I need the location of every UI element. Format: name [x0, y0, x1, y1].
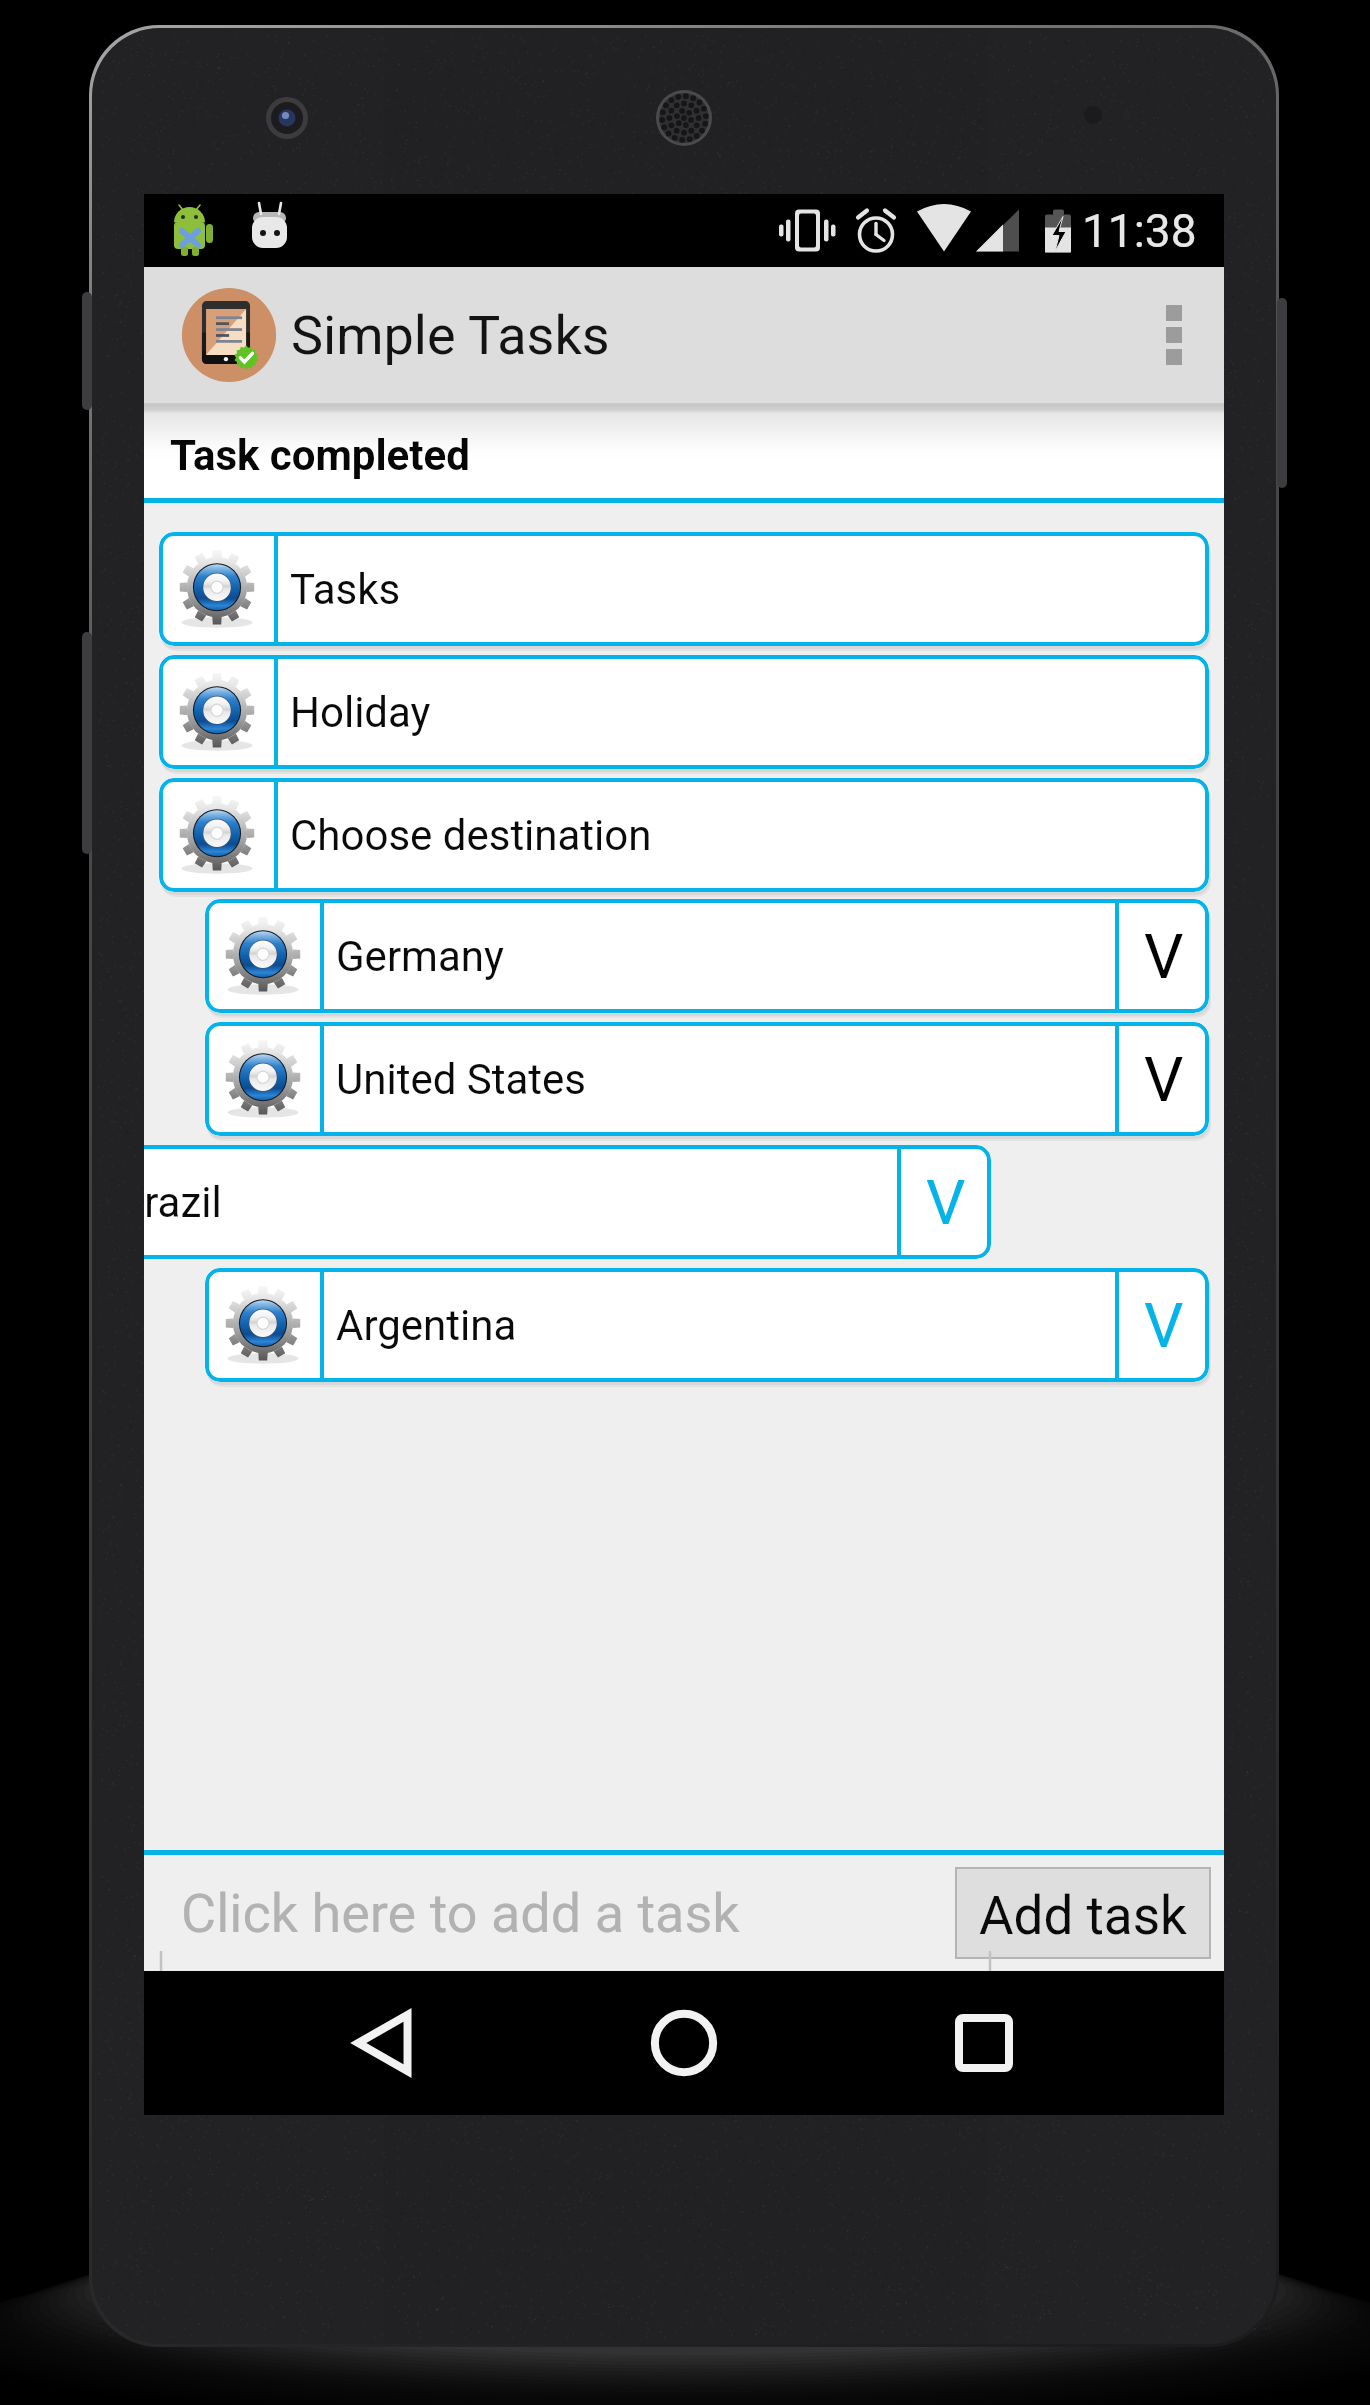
button[interactable]: Tasks [159, 532, 1209, 646]
staticText: Argentina [336, 1301, 517, 1350]
button[interactable]: Holiday [159, 655, 1209, 769]
staticText: V [1144, 1289, 1184, 1362]
staticText: 11:38 [1082, 204, 1197, 258]
staticText: Brazil [144, 1178, 222, 1227]
staticText: V [1144, 1043, 1184, 1116]
button[interactable]: United States [205, 1022, 1209, 1136]
button[interactable]: Argentina [205, 1268, 1209, 1382]
staticText: United States [336, 1055, 586, 1104]
staticText: Simple Tasks [291, 304, 610, 367]
button[interactable]: Recent apps [924, 1971, 1044, 2115]
staticText: Germany [336, 932, 504, 981]
button[interactable]: Germany [205, 899, 1209, 1013]
staticText: Click here to add a task [181, 1882, 740, 1945]
button[interactable]: More options [1124, 267, 1224, 403]
staticText: Tasks [290, 565, 401, 614]
button[interactable]: Choose destination [159, 778, 1209, 892]
staticText: Add task [979, 1885, 1187, 1947]
button[interactable]: Brazil [144, 1145, 991, 1259]
button[interactable]: Click here to add a task [144, 1855, 1030, 1971]
button[interactable]: Home [624, 1971, 744, 2115]
staticText: Choose destination [290, 811, 652, 860]
button[interactable]: Add task [955, 1867, 1211, 1959]
staticText: V [926, 1166, 966, 1239]
staticText: Task completed [170, 431, 470, 480]
staticText: V [1144, 920, 1184, 993]
staticText: Holiday [290, 688, 431, 737]
button[interactable]: Back [324, 1971, 444, 2115]
